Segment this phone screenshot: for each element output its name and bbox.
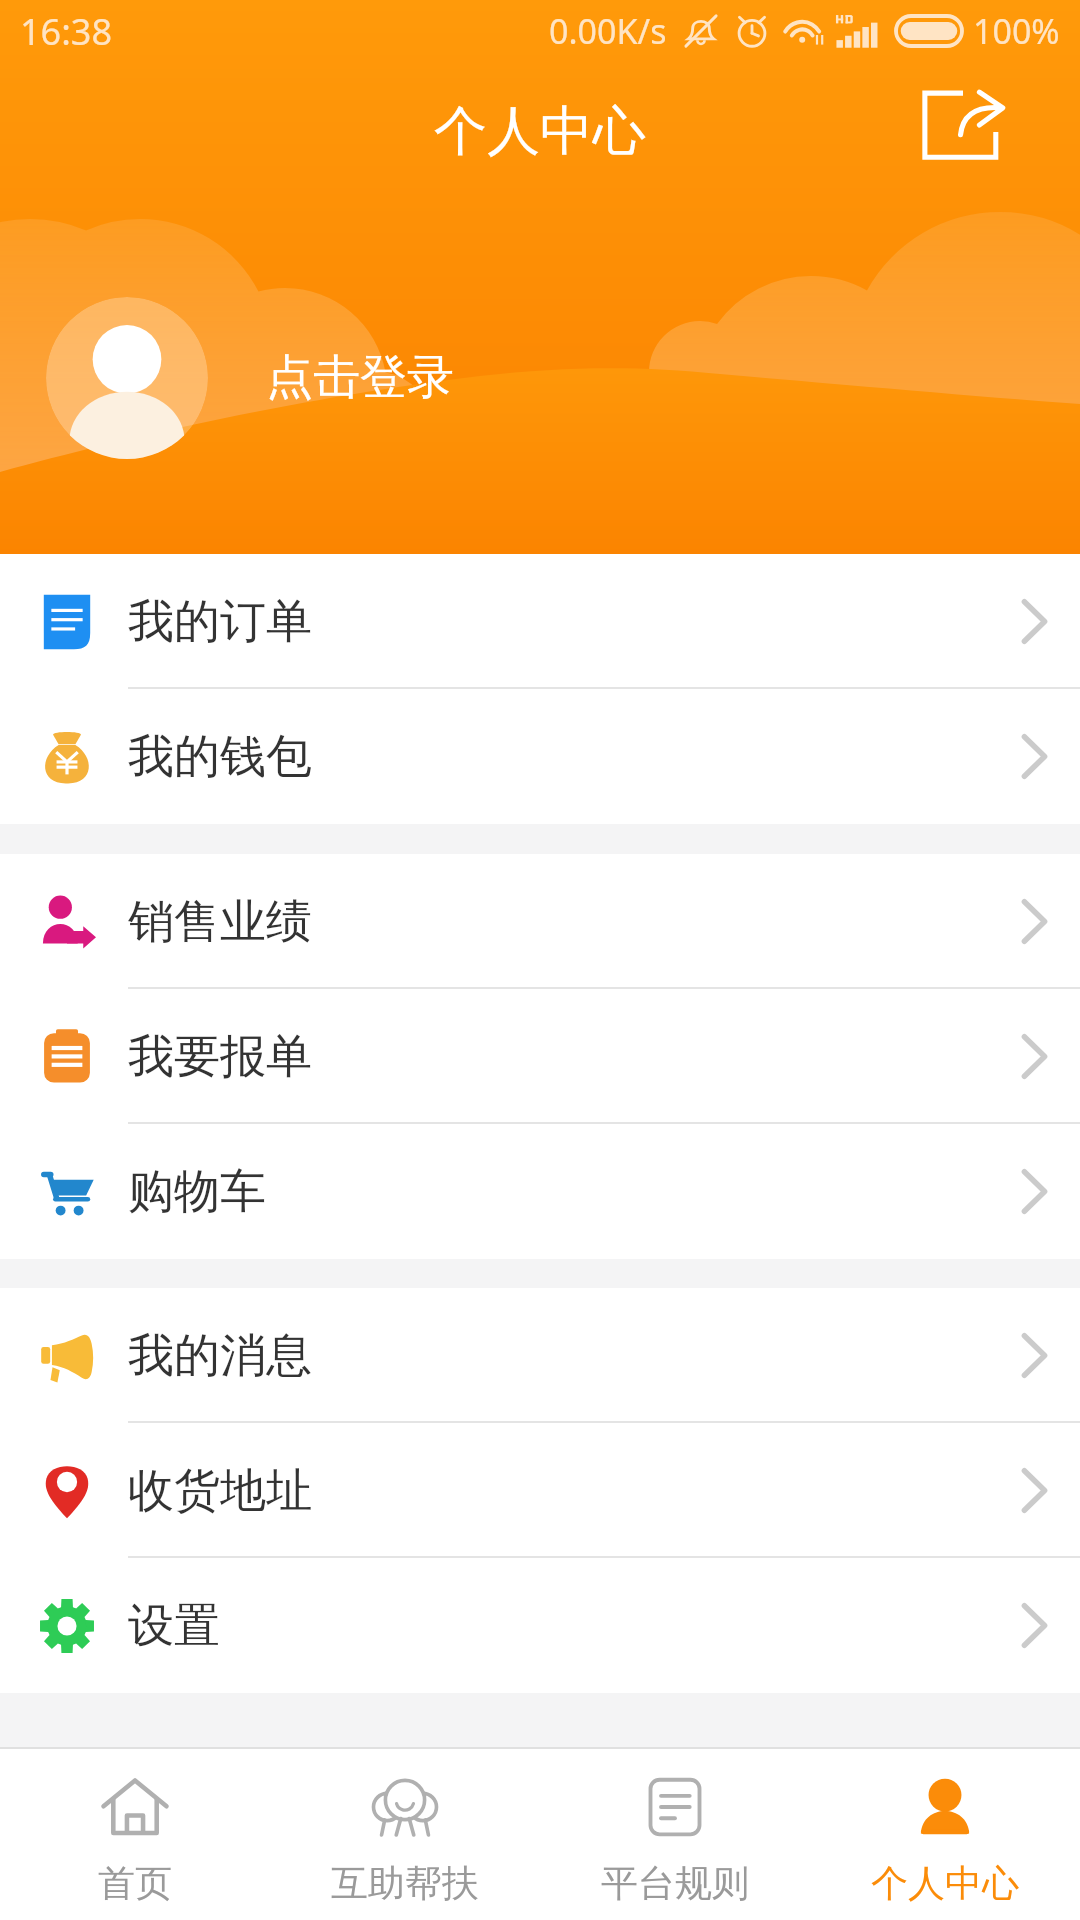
button[interactable]: 首页 — [0, 1749, 270, 1920]
button[interactable]: 购物车 — [0, 1124, 1080, 1259]
button[interactable]: Share — [900, 62, 1026, 188]
staticText: 购物车 — [128, 1163, 266, 1221]
staticText: 个人中心 — [871, 1860, 1019, 1907]
staticText: 平台规则 — [601, 1860, 749, 1907]
staticText: 我的钱包 — [128, 728, 312, 786]
button[interactable]: 我的订单 — [0, 554, 1080, 689]
staticText: 首页 — [98, 1860, 172, 1907]
button[interactable]: 设置 — [0, 1558, 1080, 1693]
staticText: 点击登录 — [266, 348, 454, 407]
button[interactable]: 我的钱包 — [0, 689, 1080, 824]
staticText: 0.00K/s — [549, 8, 667, 54]
button[interactable] — [46, 297, 208, 459]
staticText: 100% — [973, 8, 1060, 54]
staticText: 设置 — [128, 1597, 220, 1655]
staticText: 我的消息 — [128, 1327, 312, 1385]
button[interactable]: 收货地址 — [0, 1423, 1080, 1558]
button[interactable]: 点击登录 — [266, 348, 454, 407]
button[interactable]: 我的消息 — [0, 1288, 1080, 1423]
staticText: 个人中心 — [434, 98, 646, 165]
staticText: 我要报单 — [128, 1028, 312, 1086]
staticText: 16:38 — [20, 7, 113, 56]
staticText: 销售业绩 — [128, 893, 312, 951]
button[interactable]: 平台规则 — [540, 1749, 810, 1920]
button[interactable]: 个人中心 — [810, 1749, 1080, 1920]
button[interactable]: 互助帮扶 — [270, 1749, 540, 1920]
staticText: 我的订单 — [128, 593, 312, 651]
button[interactable]: 我要报单 — [0, 989, 1080, 1124]
staticText: 互助帮扶 — [331, 1860, 479, 1907]
button[interactable]: 销售业绩 — [0, 854, 1080, 989]
staticText: 收货地址 — [128, 1462, 312, 1520]
